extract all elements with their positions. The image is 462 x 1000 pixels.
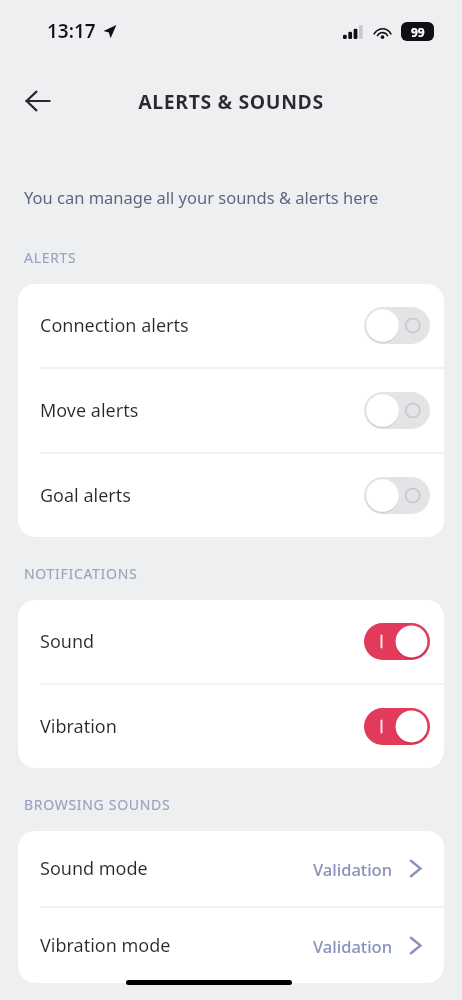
staticText: Move alerts <box>40 398 364 423</box>
button[interactable]: Vibration <box>18 685 444 768</box>
staticText: Connection alerts <box>40 313 364 338</box>
staticText: You can manage all your sounds & alerts … <box>24 186 379 208</box>
staticText: Sound mode <box>40 856 313 881</box>
staticText: Sound <box>40 629 364 654</box>
button[interactable]: Goal alerts <box>18 454 444 537</box>
button[interactable]: Back <box>14 77 62 125</box>
button[interactable]: Move alerts <box>18 369 444 452</box>
staticText: Validation <box>313 935 393 957</box>
staticText: Validation <box>313 858 393 880</box>
button[interactable]: Connection alerts <box>18 284 444 367</box>
staticText: 13:17 <box>47 18 96 44</box>
staticText: Goal alerts <box>40 483 364 508</box>
staticText: NOTIFICATIONS <box>24 564 138 583</box>
staticText: 99 <box>411 24 425 40</box>
staticText: BROWSING SOUNDS <box>24 795 171 814</box>
button[interactable]: Sound mode <box>18 831 444 906</box>
staticText: Vibration mode <box>40 933 313 958</box>
staticText: Vibration <box>40 714 364 739</box>
button[interactable]: Vibration mode <box>18 908 444 983</box>
button[interactable]: Sound <box>18 600 444 683</box>
staticText: ALERTS & SOUNDS <box>138 88 324 115</box>
staticText: ALERTS <box>24 248 77 267</box>
